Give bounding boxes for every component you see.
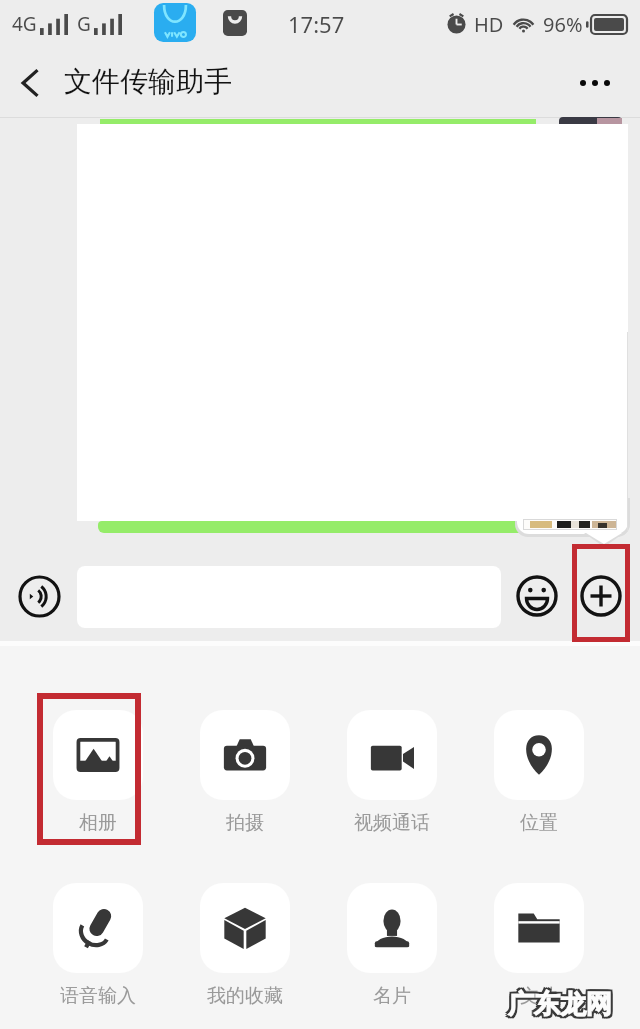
- staticText: 拍摄: [226, 811, 264, 835]
- staticText: 17:57: [288, 9, 345, 39]
- staticText: 视频通话: [354, 811, 430, 835]
- button[interactable]: Back: [0, 48, 60, 118]
- staticText: 广东龙网: [506, 990, 610, 1023]
- staticText: 位置: [520, 811, 558, 835]
- staticText: 文件: [520, 984, 558, 1008]
- staticText: 96%: [543, 11, 583, 38]
- button[interactable]: 位置: [477, 694, 601, 845]
- button[interactable]: 相册: [36, 694, 160, 845]
- button[interactable]: More functions: [576, 571, 626, 621]
- staticText: G: [77, 11, 91, 37]
- button[interactable]: 视频通话: [330, 694, 454, 845]
- staticText: 广东龙网: [508, 990, 612, 1023]
- staticText: 我的收藏: [207, 984, 283, 1008]
- staticText: 广东龙网: [508, 986, 612, 1019]
- staticText: 广东龙网: [506, 986, 610, 1019]
- staticText: 语音输入: [60, 984, 136, 1008]
- staticText: 广东龙网: [506, 988, 610, 1021]
- button[interactable]: Voice input: [14, 571, 64, 621]
- staticText: 相册: [79, 811, 117, 835]
- button[interactable]: 语音输入: [36, 867, 160, 1018]
- staticText: 文件传输助手: [64, 64, 232, 99]
- button[interactable]: 文件: [477, 867, 601, 1018]
- button[interactable]: Emoji: [512, 571, 562, 621]
- button[interactable]: 拍摄: [183, 694, 307, 845]
- staticText: 名片: [373, 984, 411, 1008]
- button[interactable]: 名片: [330, 867, 454, 1018]
- staticText: HD: [474, 11, 504, 38]
- staticText: 广东龙网: [508, 988, 612, 1021]
- staticText: 4G: [12, 11, 37, 37]
- button[interactable]: 我的收藏: [183, 867, 307, 1018]
- button[interactable]: More options: [556, 48, 633, 118]
- staticText: 广东龙网: [510, 986, 614, 1019]
- staticText: 广东龙网: [510, 990, 614, 1023]
- staticText: 广东龙网: [510, 988, 614, 1021]
